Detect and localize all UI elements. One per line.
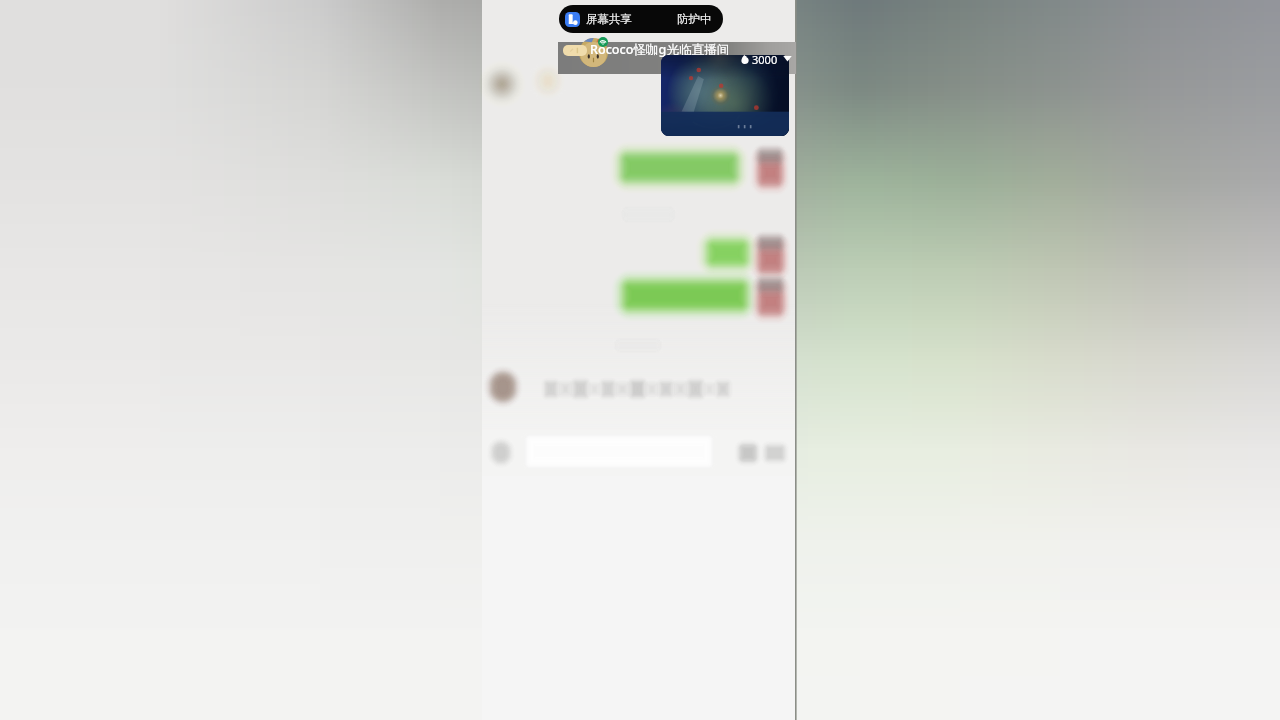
- staticText: 屏幕共享: [586, 12, 632, 26]
- button[interactable]: More: [762, 440, 788, 466]
- button[interactable]: Voice input: [488, 437, 516, 467]
- button[interactable]: Message: [703, 236, 784, 274]
- other: Live: [598, 37, 608, 47]
- staticText: Rococo怪咖g光临直播间: [590, 41, 730, 58]
- other: Collapse: [783, 54, 792, 63]
- button[interactable]: Message: [619, 277, 784, 317]
- button[interactable]: [558, 42, 796, 74]
- staticText: 3000: [752, 52, 778, 65]
- other: Heat: [740, 54, 750, 64]
- button[interactable]: Message: [619, 149, 784, 188]
- button[interactable]: 屏幕共享: [559, 5, 723, 33]
- button[interactable]: Heat: [740, 52, 792, 65]
- button[interactable]: Live preview: [661, 55, 789, 136]
- button[interactable]: Emoji: [736, 440, 762, 466]
- staticText: 防护中: [677, 12, 712, 26]
- button[interactable]: Message from contact: [489, 370, 741, 405]
